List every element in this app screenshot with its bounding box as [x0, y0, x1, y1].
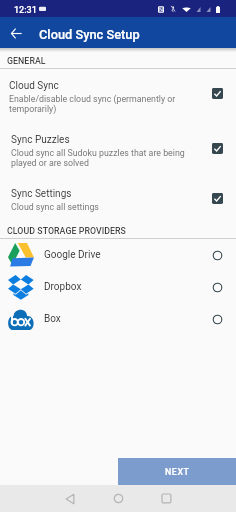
staticText: Dropbox	[44, 281, 212, 293]
button[interactable]: Recent apps	[142, 485, 190, 512]
staticText: GENERAL	[7, 56, 46, 66]
button[interactable]: Sync Puzzles	[0, 123, 236, 177]
button[interactable]: Back	[0, 17, 32, 48]
button[interactable]: Home	[94, 485, 142, 512]
button[interactable]: Sync Settings	[0, 177, 236, 222]
button[interactable]: Google Drive	[0, 239, 236, 271]
button[interactable]: Dropbox	[0, 271, 236, 303]
button[interactable]: Back	[46, 485, 94, 512]
staticText: Box	[44, 313, 212, 325]
button[interactable]: Cloud Sync	[0, 69, 236, 123]
staticText: 12:31	[14, 5, 37, 16]
button[interactable]: Box	[0, 303, 236, 335]
staticText: Cloud sync all settings	[11, 202, 99, 212]
staticText: Sync Settings	[11, 188, 72, 200]
staticText: NEXT	[165, 467, 190, 477]
staticText: Enable/disable cloud sync (permanently o…	[9, 94, 203, 114]
staticText: Cloud sync all Sudoku puzzles that are b…	[11, 148, 203, 168]
staticText: Cloud Sync Setup	[39, 27, 140, 42]
staticText: CLOUD STORAGE PROVIDERS	[7, 226, 126, 236]
staticText: Cloud Sync	[9, 80, 59, 92]
staticText: Google Drive	[44, 249, 212, 261]
button[interactable]: NEXT	[118, 458, 236, 485]
staticText: Sync Puzzles	[11, 134, 70, 146]
